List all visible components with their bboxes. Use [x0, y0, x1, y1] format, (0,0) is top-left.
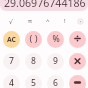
staticText: ( )	[29, 32, 38, 45]
staticText: 6	[53, 77, 58, 88]
button[interactable]: Divide	[69, 31, 86, 48]
staticText: 4	[9, 77, 14, 88]
staticText: AC	[7, 35, 16, 44]
button[interactable]: AC	[3, 31, 20, 48]
staticText: π	[28, 17, 32, 25]
button[interactable]: √	[5, 15, 17, 27]
staticText: 9	[53, 55, 58, 67]
staticText: √	[9, 18, 13, 25]
button[interactable]: 29.06976744186	[0, 0, 88, 11]
button[interactable]: 7	[3, 53, 20, 70]
button[interactable]: π	[24, 15, 36, 27]
staticText: ^	[46, 17, 50, 25]
button[interactable]: Subtract	[69, 75, 86, 88]
staticText: !	[64, 17, 66, 25]
button[interactable]: ( )	[25, 31, 42, 48]
staticText: %	[52, 33, 60, 45]
button[interactable]: ^	[42, 15, 54, 27]
staticText: 5	[31, 77, 36, 88]
button[interactable]: %	[47, 31, 64, 48]
button[interactable]: Multiply	[69, 53, 86, 70]
button[interactable]: 4	[3, 75, 20, 88]
staticText: 8	[31, 55, 36, 67]
button[interactable]: !	[59, 15, 71, 27]
button[interactable]: More functions	[74, 15, 86, 27]
staticText: 29.06976744186	[4, 0, 86, 7]
button[interactable]: 8	[25, 53, 42, 70]
staticText: 7	[9, 55, 14, 67]
button[interactable]: 9	[47, 53, 64, 70]
button[interactable]: 5	[25, 75, 42, 88]
button[interactable]: 6	[47, 75, 64, 88]
